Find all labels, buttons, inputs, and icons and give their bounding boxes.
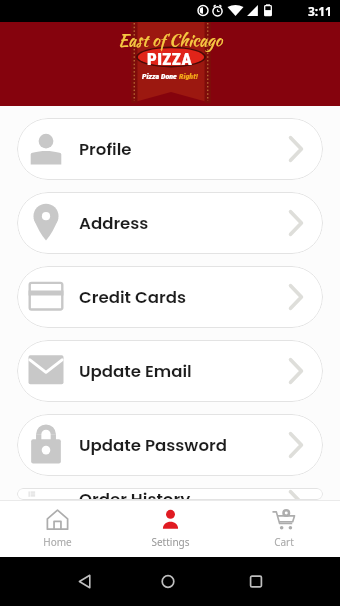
button[interactable]: Update Email: [17, 340, 323, 402]
staticText: Address: [79, 212, 149, 235]
staticText: Right!: [179, 72, 198, 81]
button[interactable]: Update Password: [17, 414, 323, 476]
staticText: PIZZA: [147, 49, 193, 69]
staticText: Order History: [79, 488, 191, 500]
staticText: Profile: [79, 138, 132, 161]
staticText: Update Email: [79, 360, 192, 383]
staticText: East of Chicago: [118, 28, 223, 53]
button[interactable]: Settings: [114, 500, 227, 557]
button[interactable]: Cart: [227, 500, 340, 557]
button[interactable]: Profile: [17, 118, 323, 180]
staticText: Credit Cards: [79, 286, 186, 309]
staticText: Settings: [151, 535, 190, 549]
staticText: Pizza Done: [142, 72, 179, 81]
staticText: Home: [43, 535, 72, 549]
button[interactable]: Address: [17, 192, 323, 254]
staticText: Cart: [274, 535, 294, 549]
button[interactable]: Order History: [17, 488, 323, 500]
staticText: 3:11: [308, 3, 332, 19]
button[interactable]: Home: [0, 500, 114, 557]
staticText: Update Password: [79, 434, 227, 457]
button[interactable]: Credit Cards: [17, 266, 323, 328]
